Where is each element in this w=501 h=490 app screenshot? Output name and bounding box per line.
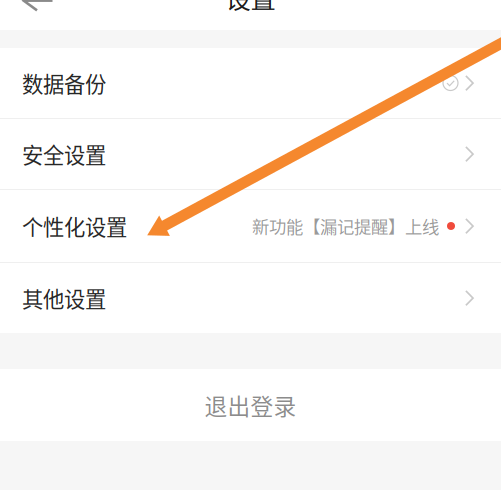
staticText: 退出登录 [204,389,296,421]
button[interactable]: Back [0,0,501,30]
button[interactable]: 数据备份 [0,48,501,118]
button[interactable]: 安全设置 [0,119,501,189]
staticText: 安全设置 [22,139,106,169]
button[interactable]: 个性化设置 [0,190,501,262]
staticText: 新功能【漏记提醒】上线 [252,213,439,239]
button[interactable]: 其他设置 [0,263,501,333]
staticText: 数据备份 [22,68,106,98]
staticText: 其他设置 [22,283,106,313]
staticText: 设置 [225,0,275,16]
staticText: 个性化设置 [22,211,127,241]
button[interactable]: 退出登录 [0,369,501,441]
